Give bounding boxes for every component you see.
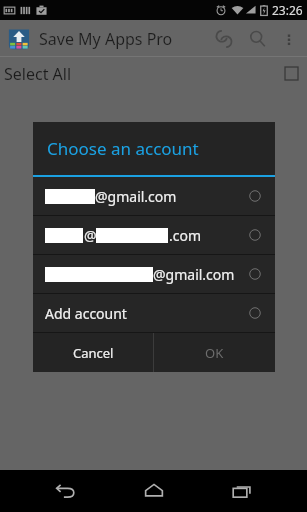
button[interactable]: Select All [0, 57, 307, 90]
button[interactable]: Add account [33, 294, 275, 332]
button[interactable]: Back [41, 470, 89, 512]
staticText: Choose an account [47, 137, 199, 160]
button[interactable]: Search [241, 22, 275, 56]
button[interactable]: @gmail.com [33, 177, 275, 215]
button[interactable]: Cancel [33, 333, 153, 372]
button[interactable]: More options [275, 25, 303, 53]
button[interactable]: Refresh [207, 22, 241, 56]
button[interactable]: Recent apps [218, 470, 266, 512]
staticText: OK [205, 344, 224, 362]
staticText: .com [169, 226, 202, 245]
staticText: @gmail.com [95, 187, 177, 206]
staticText: 23:26 [272, 2, 303, 18]
staticText: Select All [4, 63, 72, 85]
button[interactable]: OK [154, 333, 275, 372]
staticText: Add account [45, 304, 127, 323]
staticText: Cancel [73, 344, 114, 362]
staticText: @ [84, 226, 97, 245]
button[interactable]: Home [130, 470, 178, 512]
button[interactable]: @gmail.com [33, 255, 275, 293]
staticText: @gmail.com [153, 265, 235, 284]
button[interactable]: @ [33, 216, 275, 254]
staticText: Save My Apps Pro [39, 28, 173, 50]
